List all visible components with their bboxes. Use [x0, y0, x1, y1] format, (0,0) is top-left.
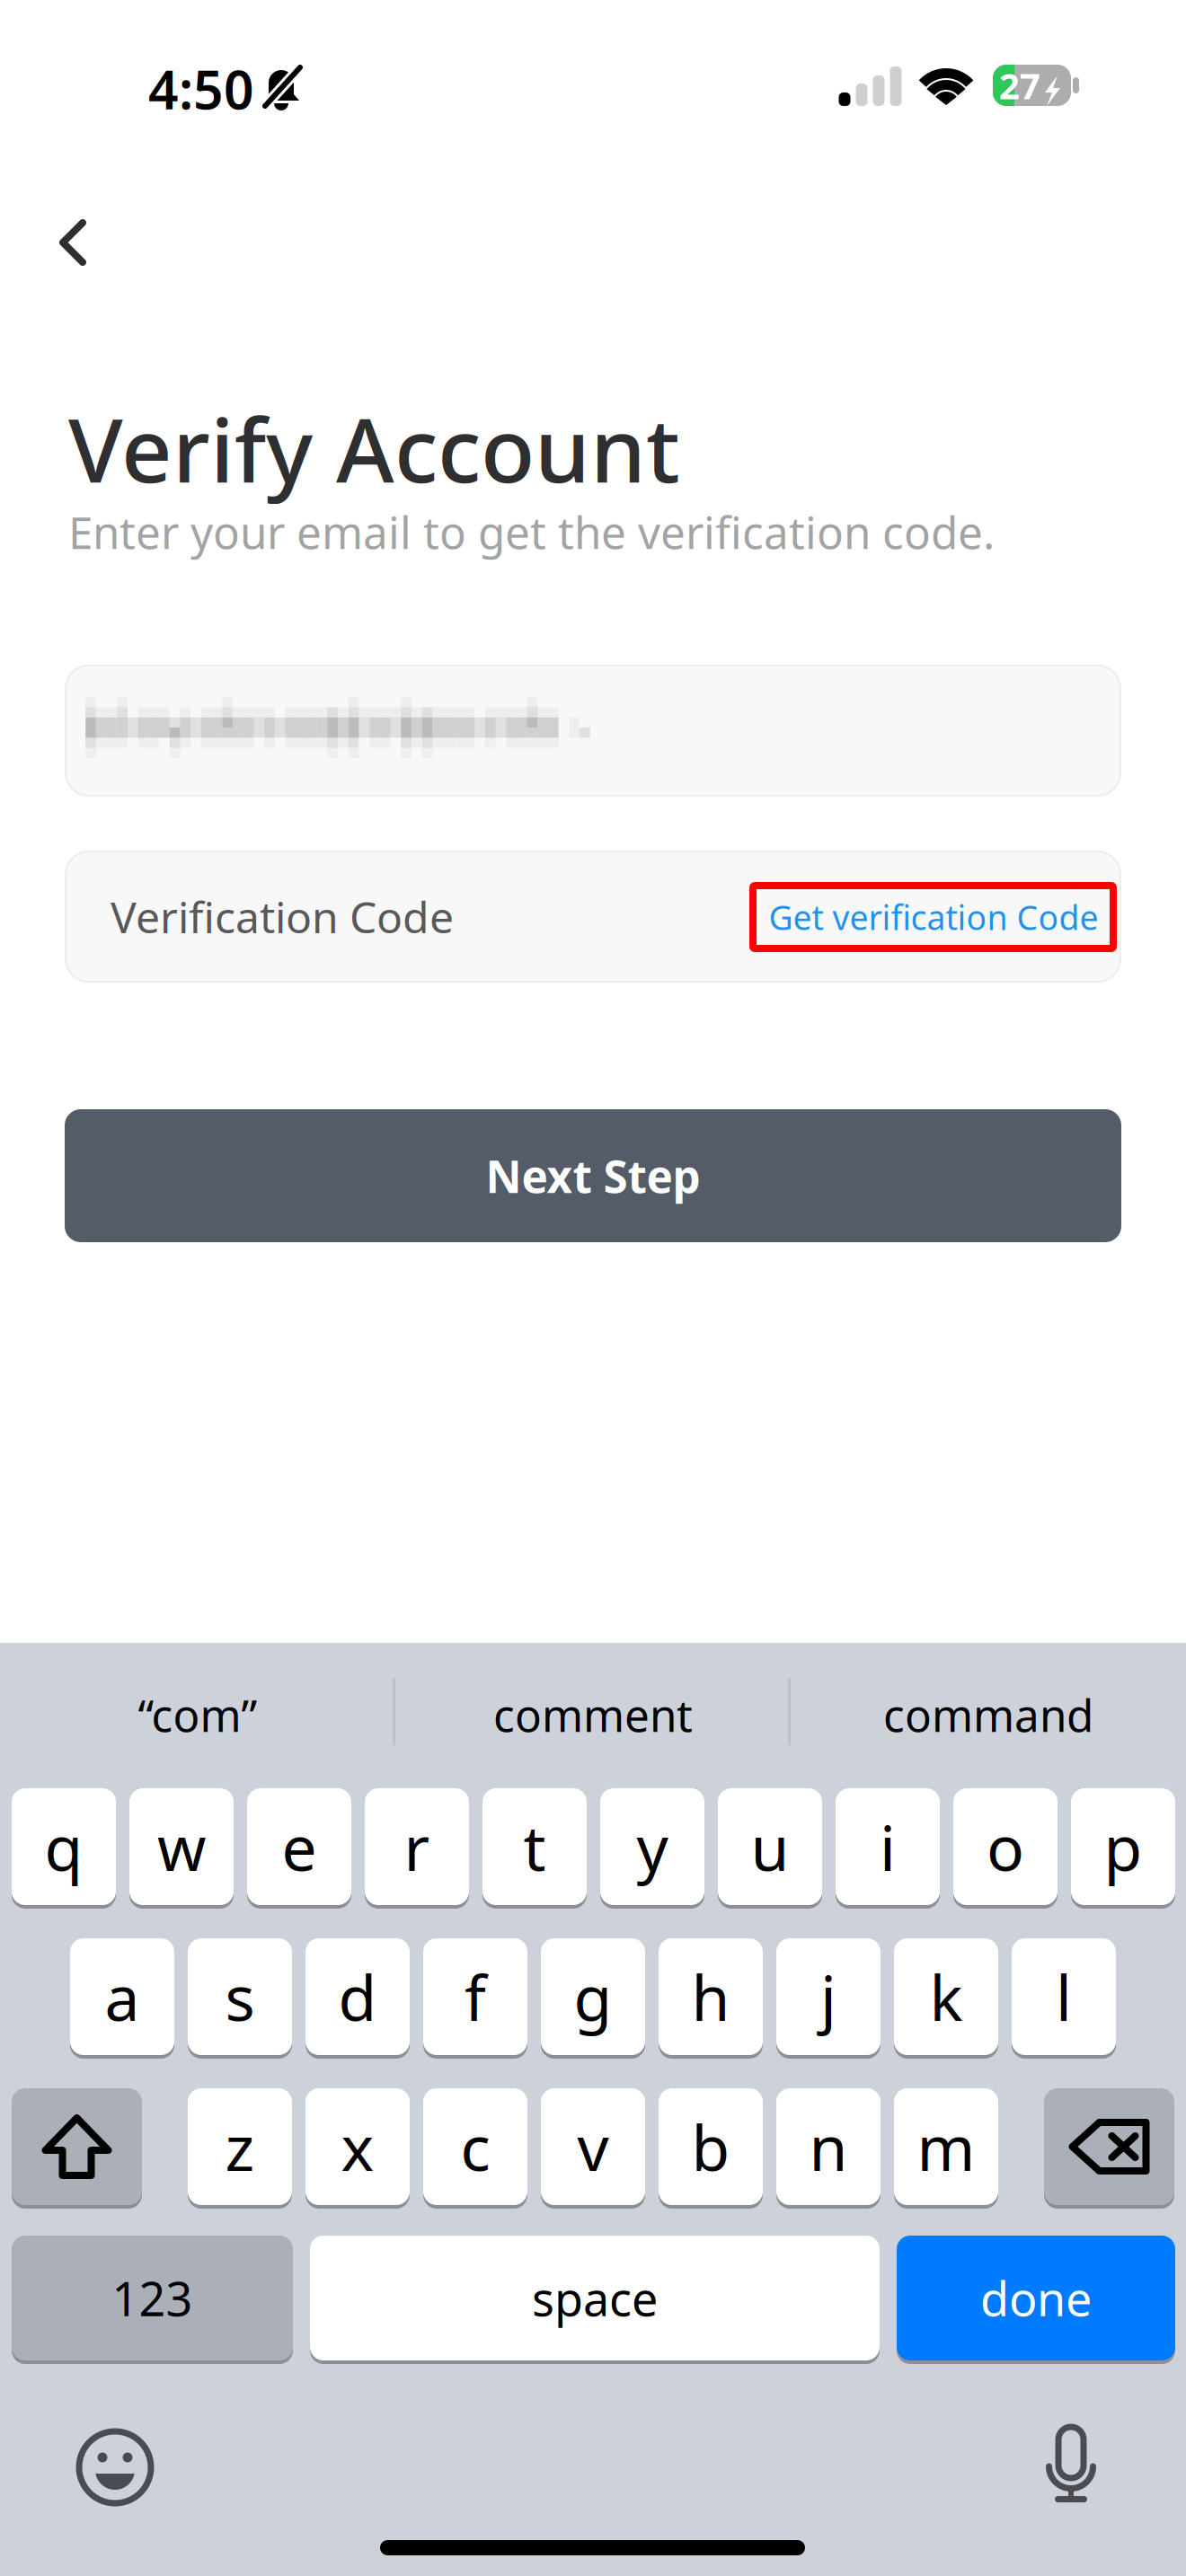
- staticText: n: [809, 2105, 848, 2188]
- button[interactable]: comment: [395, 1643, 791, 1786]
- button[interactable]: o: [953, 1786, 1058, 1907]
- staticText: a: [105, 1955, 140, 2038]
- staticText: h: [691, 1955, 730, 2038]
- button[interactable]: 123: [12, 2234, 293, 2362]
- staticText: Enter your email to get the verification…: [68, 502, 995, 561]
- staticText: comment: [493, 1685, 693, 1744]
- button[interactable]: Delete: [1044, 2086, 1174, 2207]
- staticText: v: [577, 2105, 609, 2188]
- staticText: 123: [112, 2267, 193, 2329]
- button[interactable]: r: [365, 1786, 469, 1907]
- button[interactable]: g: [541, 1936, 645, 2057]
- staticText: k: [929, 1955, 963, 2038]
- staticText: “com”: [138, 1685, 257, 1744]
- staticText: c: [460, 2105, 490, 2188]
- button[interactable]: y: [600, 1786, 704, 1907]
- staticText: j: [820, 1955, 836, 2038]
- button[interactable]: t: [482, 1786, 587, 1907]
- staticText: r: [404, 1805, 430, 1888]
- button[interactable]: v: [541, 2086, 645, 2207]
- staticText: 27: [999, 61, 1040, 109]
- button[interactable]: h: [659, 1936, 763, 2057]
- staticText: s: [225, 1955, 255, 2038]
- staticText: Verification Code: [111, 888, 454, 945]
- staticText: q: [44, 1805, 83, 1888]
- button[interactable]: k: [894, 1936, 998, 2057]
- staticText: w: [157, 1805, 206, 1888]
- button[interactable]: a: [70, 1936, 174, 2057]
- button[interactable]: Next Step: [65, 1109, 1121, 1242]
- staticText: p: [1104, 1805, 1142, 1888]
- staticText: done: [980, 2267, 1092, 2329]
- staticText: command: [883, 1685, 1093, 1744]
- button[interactable]: Dictation: [1046, 2427, 1096, 2502]
- button[interactable]: x: [305, 2086, 410, 2207]
- staticText: e: [282, 1805, 317, 1888]
- staticText: Next Step: [486, 1146, 700, 1205]
- button[interactable]: “com”: [0, 1643, 395, 1786]
- staticText: o: [987, 1805, 1024, 1888]
- button[interactable]: i: [836, 1786, 940, 1907]
- staticText: Get verification Code: [769, 895, 1098, 939]
- button[interactable]: Emoji: [78, 2430, 152, 2504]
- staticText: m: [917, 2105, 975, 2188]
- button[interactable]: n: [776, 2086, 881, 2207]
- staticText: z: [225, 2105, 255, 2188]
- button[interactable]: Back: [32, 203, 122, 282]
- button[interactable]: q: [12, 1786, 116, 1907]
- button[interactable]: space: [310, 2234, 880, 2362]
- button[interactable]: e: [247, 1786, 351, 1907]
- button[interactable]: m: [894, 2086, 998, 2207]
- staticText: t: [523, 1805, 546, 1888]
- button[interactable]: w: [129, 1786, 234, 1907]
- staticText: y: [637, 1805, 668, 1888]
- staticText: b: [691, 2105, 730, 2188]
- button[interactable]: s: [188, 1936, 292, 2057]
- button[interactable]: d: [305, 1936, 410, 2057]
- staticText: d: [338, 1955, 377, 2038]
- button[interactable]: j: [776, 1936, 881, 2057]
- button[interactable]: Get verification Code: [752, 880, 1115, 954]
- staticText: l: [1056, 1955, 1072, 2038]
- button[interactable]: z: [188, 2086, 292, 2207]
- staticText: x: [341, 2105, 374, 2188]
- button[interactable]: command: [791, 1643, 1186, 1786]
- staticText: 4:50: [148, 54, 254, 124]
- staticText: g: [574, 1955, 612, 2038]
- button[interactable]: u: [718, 1786, 822, 1907]
- button[interactable]: done: [897, 2234, 1175, 2362]
- button[interactable]: c: [423, 2086, 527, 2207]
- button[interactable]: f: [423, 1936, 527, 2057]
- button[interactable]: b: [659, 2086, 763, 2207]
- button[interactable]: l: [1012, 1936, 1116, 2057]
- staticText: i: [880, 1805, 896, 1888]
- staticText: Verify Account: [68, 389, 680, 507]
- button[interactable]: Shift: [12, 2086, 142, 2207]
- staticText: space: [532, 2267, 658, 2329]
- staticText: f: [465, 1955, 486, 2038]
- button[interactable]: p: [1071, 1786, 1175, 1907]
- staticText: u: [751, 1805, 789, 1888]
